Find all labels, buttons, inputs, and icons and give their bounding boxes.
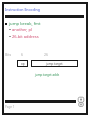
staticText: 26-bit address [12, 34, 39, 39]
button[interactable]: op [17, 60, 28, 67]
staticText: Page 1 [5, 105, 15, 109]
staticText: jump target [46, 62, 63, 66]
button[interactable]: jump target [31, 60, 78, 67]
staticText: Instruction Encoding [5, 7, 40, 12]
staticText: another, pl [12, 27, 32, 32]
button[interactable]: Logo [77, 96, 85, 108]
staticText: jump break, fmt [9, 21, 41, 27]
staticText: Bits [5, 52, 12, 57]
staticText: 26 [44, 52, 49, 57]
staticText: jump target addr. [35, 73, 60, 77]
staticText: op [21, 62, 25, 66]
staticText: 6 [21, 52, 24, 57]
